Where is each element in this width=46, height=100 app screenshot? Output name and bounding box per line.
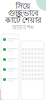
staticText: আরবি শব্দ — [12, 24, 34, 32]
staticText: গুচ্ছভাবে — [8, 8, 38, 19]
staticText: সিয়ে — [15, 1, 30, 12]
staticText: কার্টে শেয়ার — [5, 15, 41, 26]
